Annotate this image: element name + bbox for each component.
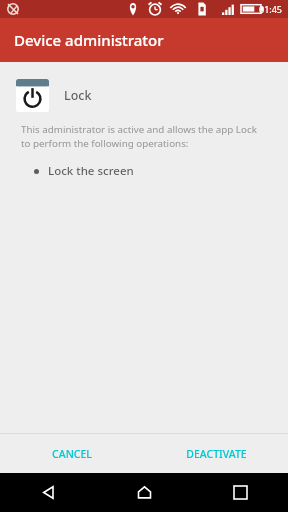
staticText: DEACTIVATE bbox=[186, 447, 247, 461]
staticText: Device administrator bbox=[14, 30, 164, 50]
staticText: Lock bbox=[64, 87, 92, 104]
staticText: Lock the screen bbox=[48, 163, 134, 179]
button[interactable]: DEACTIVATE bbox=[144, 434, 288, 473]
button[interactable]: Recent apps bbox=[192, 473, 288, 512]
staticText: 01:45 bbox=[259, 3, 283, 15]
button[interactable]: CANCEL bbox=[0, 434, 144, 473]
staticText: This administrator is active and allows … bbox=[21, 123, 266, 150]
button[interactable]: Back bbox=[0, 473, 96, 512]
button[interactable]: Home bbox=[96, 473, 192, 512]
staticText: CANCEL bbox=[52, 447, 92, 461]
